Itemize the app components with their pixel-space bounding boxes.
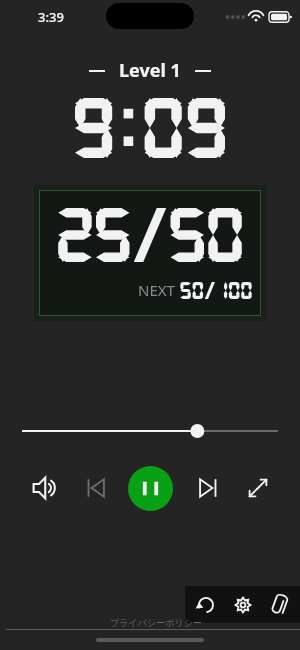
button[interactable]: Volume	[24, 468, 64, 508]
staticText: Level 1	[119, 58, 181, 83]
staticText: プライバシーポリシー	[110, 617, 202, 628]
staticText: 3:39	[38, 8, 64, 26]
button[interactable]: Attach	[264, 590, 294, 620]
button[interactable]: Settings	[228, 590, 258, 620]
button[interactable]: Next	[188, 468, 228, 508]
button[interactable]: Fullscreen	[238, 468, 278, 508]
button[interactable]: プライバシーポリシー	[6, 617, 300, 630]
button[interactable]: NEXT	[39, 190, 261, 316]
button[interactable]: Progress slider	[0, 418, 300, 444]
button[interactable]: Pause	[128, 466, 173, 511]
button[interactable]: Replay	[191, 590, 221, 620]
button[interactable]: Level 1	[89, 58, 211, 83]
staticText: NEXT	[138, 280, 175, 300]
button[interactable]: Previous	[76, 468, 116, 508]
